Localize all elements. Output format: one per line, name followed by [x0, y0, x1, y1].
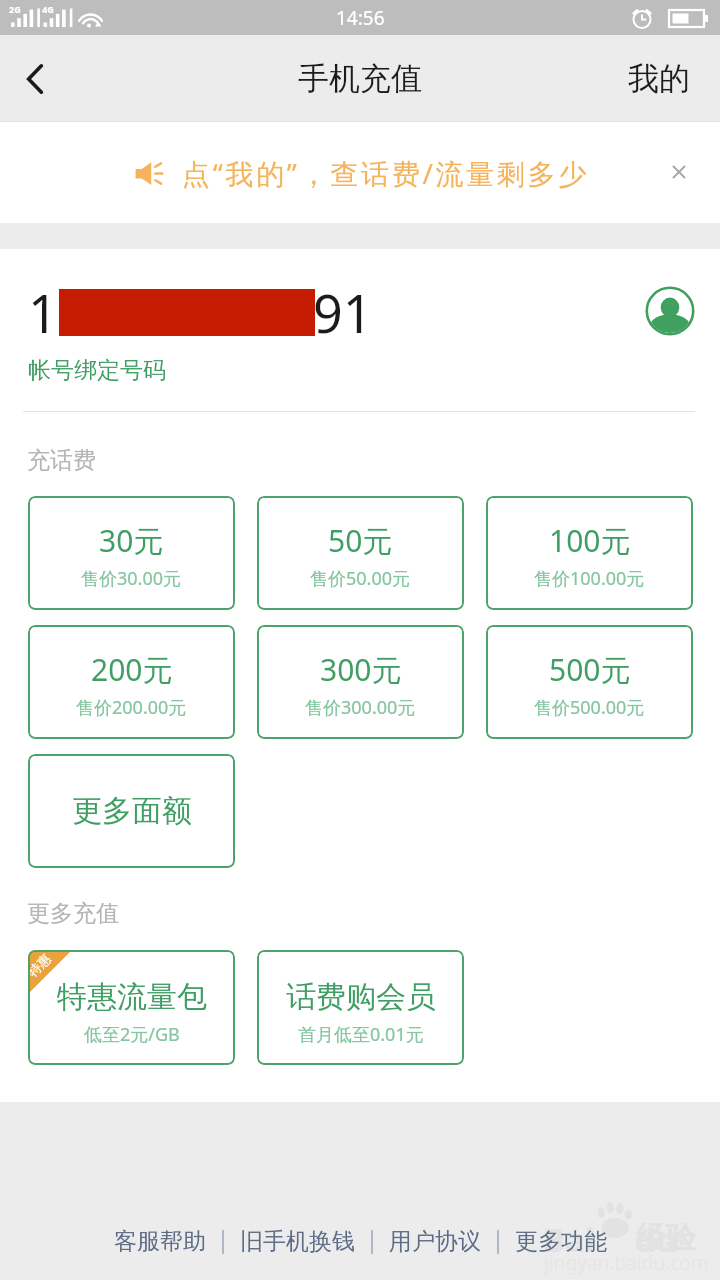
button[interactable]: 100元 [486, 496, 693, 610]
staticText: 话费购会员 [286, 978, 436, 1016]
button[interactable]: 账户 [644, 285, 696, 337]
staticText: 点“我的”，查话费/流量剩多少 [182, 154, 590, 192]
staticText: 客服帮助 [114, 1227, 206, 1256]
staticText: 更多面额 [72, 792, 192, 830]
staticText: 充话费 [27, 446, 96, 475]
staticText: 50元 [328, 520, 393, 561]
staticText: 售价300.00元 [305, 695, 416, 720]
staticText: 手机充值 [298, 59, 422, 98]
staticText: 首月低至0.01元 [298, 1022, 424, 1047]
button[interactable]: 500元 [486, 625, 693, 739]
button[interactable]: 客服帮助 [106, 1222, 214, 1261]
button[interactable]: 50元 [257, 496, 464, 610]
button[interactable]: 用户协议 [381, 1222, 489, 1261]
staticText: 更多充值 [27, 899, 119, 928]
staticText: 旧手机换钱 [240, 1227, 355, 1256]
staticText: 经验 [636, 1219, 696, 1257]
staticText: 售价30.00元 [81, 566, 182, 591]
button[interactable]: 我的 [614, 47, 704, 110]
staticText: 100元 [549, 520, 631, 561]
staticText: 特惠 [28, 950, 54, 980]
staticText: 500元 [549, 649, 631, 690]
staticText: 特惠流量包 [57, 978, 207, 1016]
staticText: 14:56 [336, 5, 385, 31]
button[interactable]: 200元 [28, 625, 235, 739]
staticText: 200元 [91, 649, 173, 690]
staticText: 30元 [99, 520, 164, 561]
button[interactable]: 更多面额 [28, 754, 235, 868]
button[interactable]: 300元 [257, 625, 464, 739]
button[interactable]: 特惠流量包 [28, 950, 235, 1065]
staticText: 91 [313, 277, 373, 348]
staticText: Bai [543, 1217, 595, 1262]
staticText: 1 [28, 277, 58, 348]
staticText: 2G [9, 3, 21, 15]
button[interactable]: 关闭 [656, 149, 702, 195]
staticText: 售价500.00元 [534, 695, 645, 720]
staticText: 300元 [320, 649, 402, 690]
staticText: 4G [42, 3, 54, 15]
staticText: 售价50.00元 [310, 566, 411, 591]
button[interactable]: 话费购会员 [257, 950, 464, 1065]
button[interactable]: 返回 [0, 35, 74, 122]
staticText: jingyan.baidu.com [544, 1250, 709, 1276]
staticText: 售价200.00元 [76, 695, 187, 720]
button[interactable]: 更多功能 [507, 1222, 615, 1261]
button[interactable]: 旧手机换钱 [232, 1222, 363, 1261]
staticText: 我的 [628, 59, 690, 98]
staticText: 售价100.00元 [534, 566, 645, 591]
staticText: 低至2元/GB [84, 1022, 180, 1047]
staticText: 帐号绑定号码 [28, 356, 166, 385]
staticText: 更多功能 [515, 1227, 607, 1256]
button[interactable]: 30元 [28, 496, 235, 610]
staticText: du [635, 1217, 678, 1262]
staticText: 用户协议 [389, 1227, 481, 1256]
